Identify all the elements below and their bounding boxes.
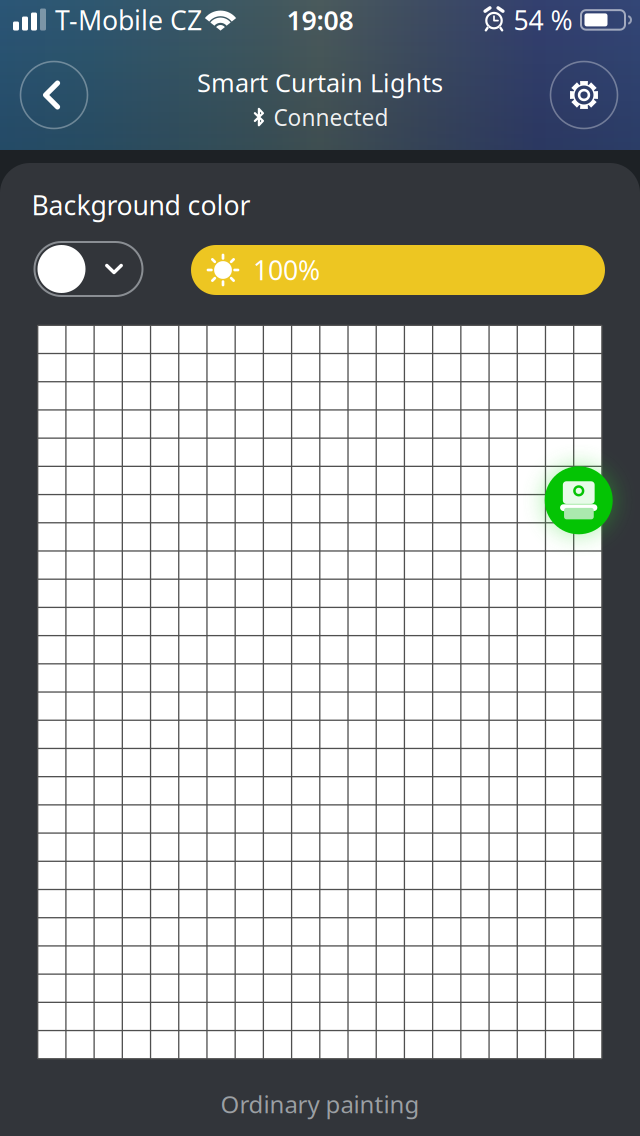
button[interactable]: Back — [20, 61, 87, 128]
staticText: 19:08 — [286, 2, 353, 38]
staticText: Background color — [31, 187, 250, 223]
button[interactable]: Settings — [550, 61, 617, 128]
button[interactable]: Pick color — [34, 242, 142, 296]
staticText: T-Mobile CZ — [55, 2, 202, 38]
staticText: 100% — [253, 252, 320, 288]
staticText: Ordinary painting — [220, 1088, 419, 1120]
button[interactable]: Brightness 100 percent — [191, 245, 605, 295]
staticText: 54 % — [513, 2, 572, 38]
staticText: Smart Curtain Lights — [197, 66, 443, 99]
staticText: Connected — [273, 102, 388, 132]
